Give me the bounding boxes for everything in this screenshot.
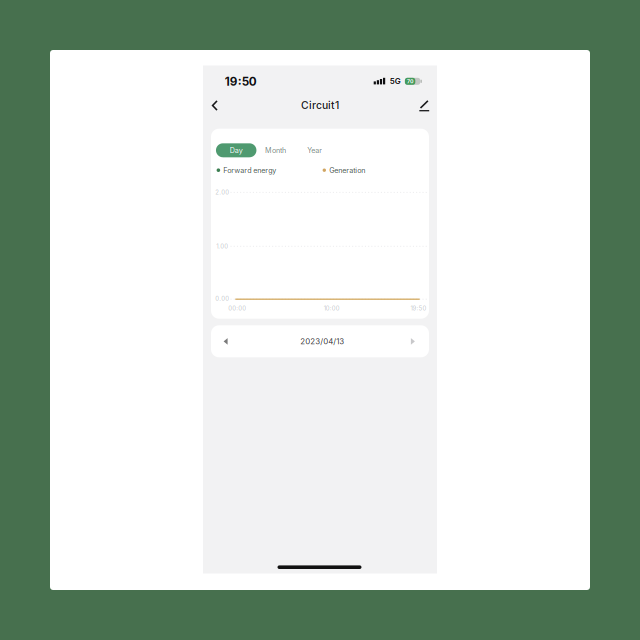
button[interactable]: Next day [411,338,415,345]
staticText: 19:50 [410,305,426,312]
staticText: 19:50 [225,74,257,88]
button[interactable]: Month [256,143,296,157]
staticText: 1.00 [216,243,228,250]
staticText: Month [265,146,286,155]
staticText: 10:00 [324,305,340,312]
staticText: 2.00 [215,189,229,196]
button[interactable]: Previous day [224,338,228,345]
button[interactable]: Year [299,143,331,157]
staticText: Day [230,146,243,155]
button[interactable]: Edit [418,100,430,112]
staticText: 00:00 [228,305,246,312]
staticText: 0.00 [215,295,229,302]
staticText: Circuit1 [301,99,339,112]
button[interactable]: Day [216,143,256,157]
staticText: 2023/04/13 [300,337,344,346]
staticText: 70 [407,78,414,85]
staticText: Generation [329,166,365,175]
staticText: Forward energy [223,166,276,175]
staticText: Year [307,146,322,155]
staticText: 5G [390,76,401,86]
button[interactable]: Back [207,99,223,112]
